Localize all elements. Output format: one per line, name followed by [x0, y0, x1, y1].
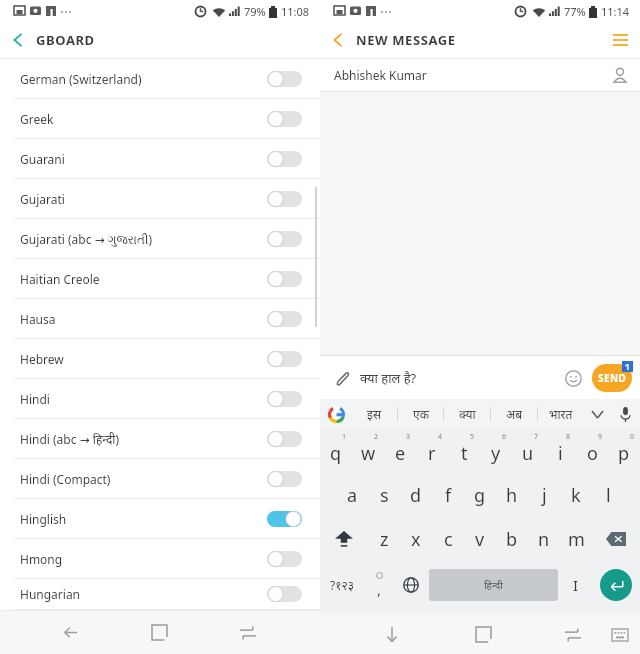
- button[interactable]: 6: [480, 429, 512, 473]
- staticText: 1: [625, 361, 630, 372]
- staticText: p: [618, 441, 630, 466]
- staticText: g: [474, 483, 486, 508]
- button[interactable]: Comma: [363, 561, 395, 609]
- staticText: 3: [406, 432, 411, 442]
- button[interactable]: Home: [133, 611, 185, 654]
- button[interactable]: 4: [416, 429, 448, 473]
- button[interactable]: 5: [448, 429, 480, 473]
- staticText: ,: [377, 579, 382, 599]
- button[interactable]: Backspace: [592, 517, 640, 561]
- staticText: अब: [506, 406, 523, 422]
- staticText: 8: [566, 432, 571, 442]
- button[interactable]: Greek: [0, 99, 320, 139]
- button[interactable]: More suggestions: [584, 401, 610, 427]
- staticText: क्या: [459, 406, 476, 422]
- button[interactable]: c: [432, 517, 464, 561]
- staticText: Hindi: [20, 391, 267, 407]
- button[interactable]: Enter: [600, 569, 632, 601]
- button[interactable]: g: [464, 473, 496, 517]
- button[interactable]: 1: [320, 429, 352, 473]
- button[interactable]: b: [496, 517, 528, 561]
- button[interactable]: German (Switzerland): [0, 59, 320, 99]
- button[interactable]: Haitian Creole: [0, 259, 320, 299]
- button[interactable]: Hebrew: [0, 339, 320, 379]
- button[interactable]: l: [592, 473, 624, 517]
- staticText: j: [542, 483, 547, 508]
- button[interactable]: Hungarian: [0, 579, 320, 610]
- staticText: q: [330, 441, 342, 466]
- button[interactable]: Gujarati: [0, 179, 320, 219]
- button[interactable]: Hausa: [0, 299, 320, 339]
- button[interactable]: m: [560, 517, 592, 561]
- staticText: i: [558, 441, 563, 466]
- button[interactable]: Google: [320, 399, 352, 429]
- button[interactable]: Hindi (abc → हिन्दी): [0, 419, 320, 459]
- button[interactable]: Voice input: [610, 399, 640, 429]
- button[interactable]: s: [368, 473, 400, 517]
- button[interactable]: Hide keyboard: [366, 615, 418, 654]
- button[interactable]: Attach: [330, 366, 354, 390]
- button[interactable]: h: [496, 473, 528, 517]
- button[interactable]: Abhishek Kumar: [334, 59, 628, 91]
- button[interactable]: Back: [0, 22, 36, 58]
- staticText: t: [461, 441, 468, 466]
- button[interactable]: v: [464, 517, 496, 561]
- button[interactable]: ?१२३: [320, 561, 363, 609]
- button[interactable]: Hmong: [0, 539, 320, 579]
- button[interactable]: 9: [576, 429, 608, 473]
- button[interactable]: z: [368, 517, 400, 561]
- staticText: Hinglish: [20, 511, 267, 527]
- staticText: Abhishek Kumar: [334, 67, 612, 83]
- button[interactable]: Keyboard settings: [599, 615, 640, 654]
- staticText: 1: [342, 432, 347, 442]
- button[interactable]: इस: [352, 399, 397, 429]
- staticText: r: [428, 441, 436, 466]
- staticText: 77%: [564, 4, 586, 19]
- staticText: हिन्दी: [484, 578, 503, 592]
- button[interactable]: 7: [512, 429, 544, 473]
- button[interactable]: Hindi (Compact): [0, 459, 320, 499]
- button[interactable]: n: [528, 517, 560, 561]
- button[interactable]: 2: [352, 429, 384, 473]
- staticText: x: [411, 527, 421, 552]
- button[interactable]: a: [336, 473, 368, 517]
- button[interactable]: 8: [544, 429, 576, 473]
- button[interactable]: Hindi: [0, 379, 320, 419]
- button[interactable]: Guarani: [0, 139, 320, 179]
- button[interactable]: Change language: [395, 561, 427, 609]
- button[interactable]: क्या: [444, 399, 490, 429]
- staticText: 7: [534, 432, 539, 442]
- staticText: c: [444, 527, 453, 552]
- button[interactable]: हिन्दी: [429, 569, 558, 601]
- button[interactable]: 3: [384, 429, 416, 473]
- button[interactable]: 0: [608, 429, 640, 473]
- staticText: u: [522, 441, 534, 466]
- staticText: w: [361, 441, 376, 466]
- button[interactable]: Emoji: [560, 365, 586, 391]
- button[interactable]: Recents: [547, 615, 599, 654]
- button[interactable]: Hinglish: [0, 499, 320, 539]
- button[interactable]: Back: [320, 22, 356, 58]
- button[interactable]: Home: [457, 615, 509, 654]
- button[interactable]: Gujarati (abc → ગુજરાતી): [0, 219, 320, 259]
- staticText: SEND: [598, 371, 627, 385]
- button[interactable]: Back: [44, 611, 96, 654]
- button[interactable]: Menu: [600, 22, 640, 58]
- button[interactable]: d: [400, 473, 432, 517]
- button[interactable]: x: [400, 517, 432, 561]
- button[interactable]: भारत: [538, 399, 584, 429]
- button[interactable]: j: [528, 473, 560, 517]
- button[interactable]: SEND: [592, 364, 632, 392]
- staticText: Hungarian: [20, 586, 267, 602]
- button[interactable]: I: [560, 561, 592, 609]
- staticText: 11:08: [281, 4, 310, 19]
- staticText: 79%: [244, 4, 266, 19]
- staticText: a: [347, 483, 358, 508]
- button[interactable]: k: [560, 473, 592, 517]
- staticText: y: [491, 441, 501, 466]
- button[interactable]: अब: [491, 399, 537, 429]
- button[interactable]: एक: [398, 399, 443, 429]
- button[interactable]: Shift: [320, 517, 368, 561]
- button[interactable]: f: [432, 473, 464, 517]
- button[interactable]: Recents: [222, 611, 274, 654]
